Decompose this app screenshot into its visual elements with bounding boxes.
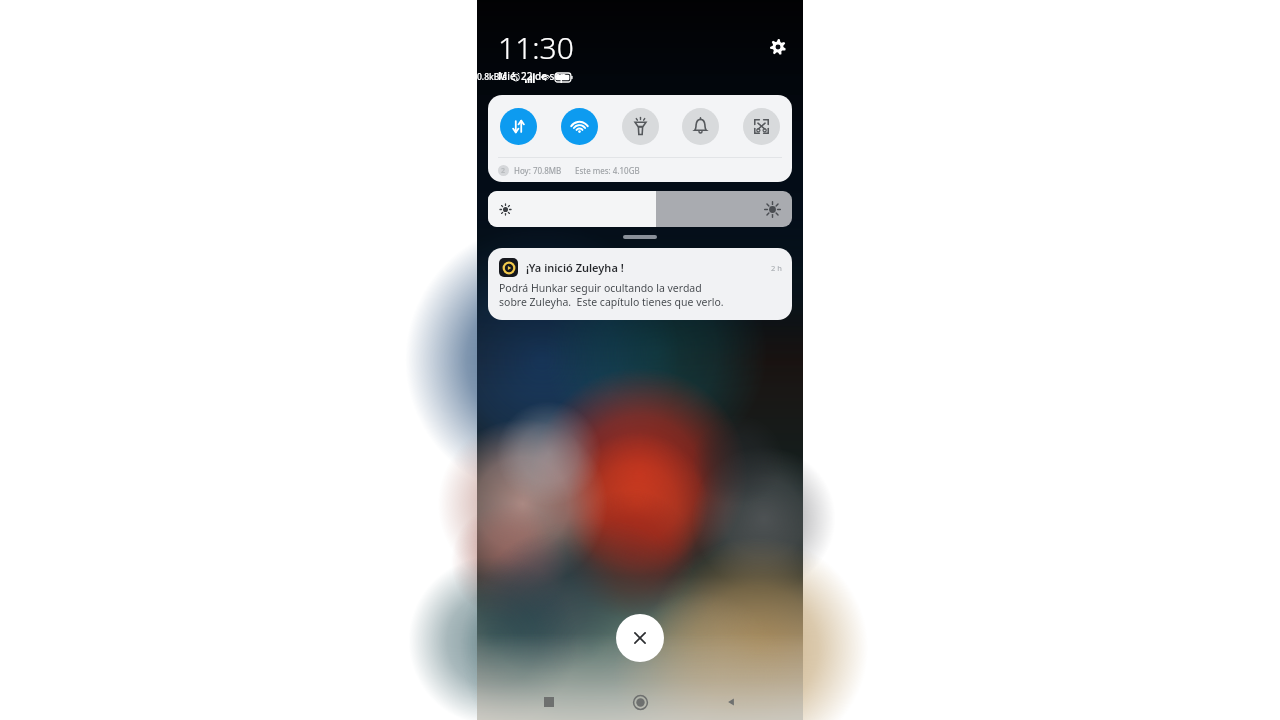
staticText: 0.8kB/s <box>477 71 507 83</box>
staticText: ¡Ya inició Zuleyha ! <box>526 260 624 275</box>
staticText: Podrá Hunkar seguir ocultando la verdad <box>499 281 702 295</box>
button[interactable]: Notifications <box>682 108 719 145</box>
staticText: Este mes: 4.10GB <box>575 165 640 176</box>
button[interactable]: Settings <box>767 36 789 58</box>
staticText: sobre Zuleyha. Este capítulo tienes que … <box>499 295 724 309</box>
button[interactable]: Home <box>621 684 659 720</box>
button[interactable]: ¡Ya inició Zuleyha ! <box>488 248 792 320</box>
staticText: Mié. 22 de sep. <box>498 69 570 83</box>
button[interactable]: Wi-Fi <box>561 108 598 145</box>
button[interactable]: 2 <box>488 158 792 182</box>
button[interactable]: Clear all notifications <box>616 614 664 662</box>
staticText: 2 <box>501 166 506 176</box>
staticText: Hoy: 70.8MB <box>514 165 562 176</box>
button[interactable]: Screenshot <box>743 108 780 145</box>
button[interactable]: Recents <box>530 684 568 720</box>
staticText: 2 h <box>771 263 782 273</box>
button[interactable]: Flashlight <box>622 108 659 145</box>
staticText: 11:30 <box>498 27 574 68</box>
button[interactable]: Mobile data <box>500 108 537 145</box>
button[interactable]: Brightness <box>488 191 792 227</box>
button[interactable]: Back <box>712 684 750 720</box>
